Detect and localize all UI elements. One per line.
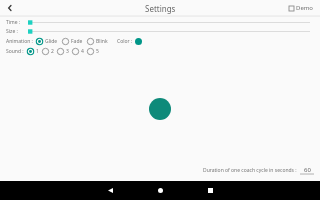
button[interactable]: 4 [71,48,85,55]
button[interactable]: Choose color [135,38,142,45]
button[interactable]: 3 [56,48,70,55]
button[interactable]: Coach indicator [149,98,171,120]
button[interactable]: 5 [86,48,100,55]
staticText: 5 [96,48,99,55]
button[interactable]: Back [100,181,120,200]
staticText: 3 [66,48,69,55]
staticText: Animation : [6,38,33,45]
button[interactable]: 2 [41,48,55,55]
staticText: 60 [304,166,311,174]
button[interactable]: 60 [300,166,314,175]
button[interactable] [28,27,312,36]
staticText: Sound : [6,48,24,55]
staticText: Fade [71,38,83,45]
button[interactable]: Recent apps [200,181,220,200]
button[interactable]: Blink [86,38,109,45]
staticText: Color : [117,38,133,45]
staticText: Blink [96,38,108,45]
staticText: Demo [296,4,314,12]
staticText: Settings [145,3,176,14]
staticText: Duration of one coach cycle in seconds : [203,167,297,174]
staticText: Glide [45,38,58,45]
staticText: Time : [6,19,21,26]
button[interactable] [28,18,312,27]
button[interactable]: Fade [61,38,84,45]
staticText: 2 [51,48,54,55]
staticText: Size : [6,28,18,35]
staticText: 4 [81,48,84,55]
button[interactable]: 1 [26,48,40,55]
button[interactable]: Home [150,181,170,200]
staticText: 1 [36,48,39,55]
button[interactable]: Demo [287,2,316,14]
button[interactable]: Glide [35,38,59,45]
button[interactable]: Back [3,1,17,15]
